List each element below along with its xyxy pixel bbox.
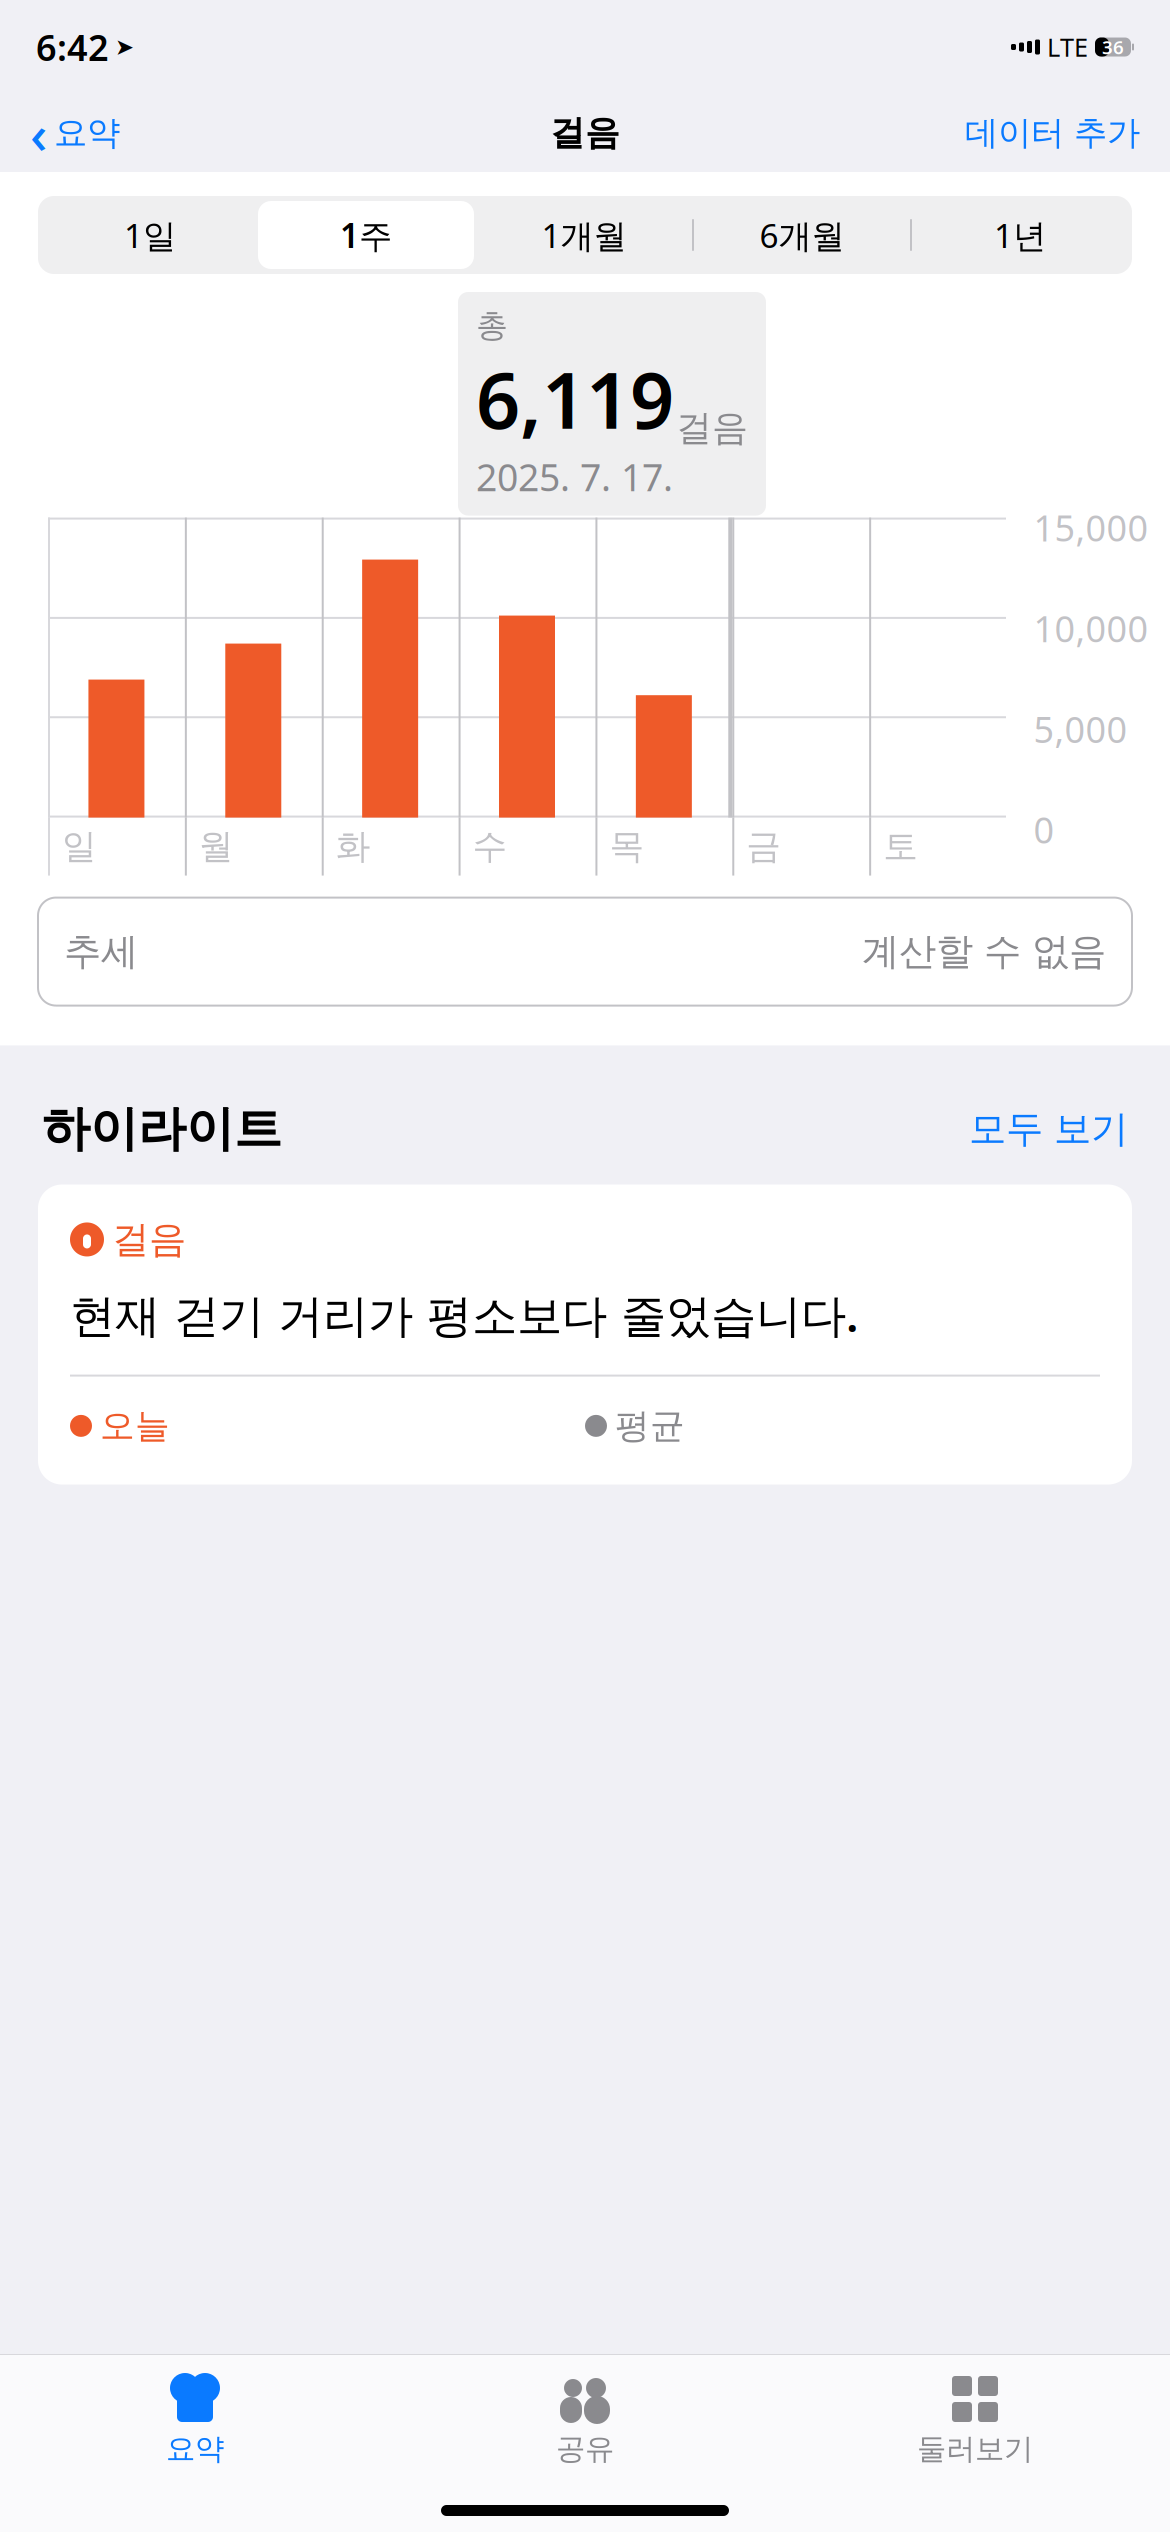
button[interactable]: 모두 보기 [959,1100,1128,1158]
staticText: 1개월 [541,213,626,257]
staticText: 오늘 [100,1405,170,1447]
staticText: 모두 보기 [969,1106,1128,1152]
staticText: ‹ [30,98,47,168]
staticText: 수 [473,825,508,868]
staticText: 0 [1033,806,1054,853]
staticText: 둘러보기 [917,2431,1033,2467]
staticText: 6,119 [476,347,674,450]
staticText: 1주 [340,213,392,257]
staticText: 걸음 [676,406,748,450]
button[interactable]: 1주 [258,201,474,269]
staticText: 월 [199,825,234,868]
staticText: 걸음 [112,1216,186,1262]
staticText: 일 [62,825,97,868]
staticText: 5,000 [1033,705,1127,753]
staticText: 공유 [556,2431,614,2467]
staticText: 36 [1102,35,1124,59]
button[interactable]: 6개월 [694,201,910,269]
staticText: 요약 [166,2431,224,2467]
button[interactable]: 1개월 [476,201,692,269]
staticText: LTE [1047,30,1088,64]
staticText: 15,000 [1033,504,1148,551]
staticText: ➤ [115,34,134,60]
button[interactable]: 🔥 [38,1184,1132,1484]
staticText: 1년 [994,213,1046,257]
button[interactable]: 1년 [912,201,1128,269]
staticText: 화 [336,825,371,868]
staticText: 현재 걷기 거리가 평소보다 줄었습니다. [70,1284,859,1345]
staticText: 토 [883,825,918,868]
button[interactable]: 요약 [0,2371,390,2471]
staticText: 6:42 [36,23,109,71]
staticText: 하이라이트 [42,1100,282,1159]
staticText: 추세 [64,929,138,974]
button[interactable]: 데이터 추가 [957,106,1148,159]
staticText: 6개월 [759,213,844,257]
staticText: 1일 [124,213,176,257]
staticText: 10,000 [1033,604,1148,652]
staticText: 2025. 7. 17. [476,452,673,502]
button[interactable]: ‹ [22,92,128,174]
button[interactable]: 추세 [38,898,1132,1006]
staticText: 데이터 추가 [965,112,1140,153]
staticText: 금 [746,825,781,868]
staticText: 요약 [54,112,120,153]
button[interactable]: 공유 [390,2371,780,2471]
button[interactable]: 둘러보기 [780,2371,1170,2471]
staticText: 계산할 수 없음 [862,929,1106,974]
staticText: 걸음 [550,112,620,154]
staticText: 평균 [615,1405,685,1447]
button[interactable]: 1일 [42,201,258,269]
staticText: 총 [476,306,508,345]
staticText: 목 [609,825,644,868]
